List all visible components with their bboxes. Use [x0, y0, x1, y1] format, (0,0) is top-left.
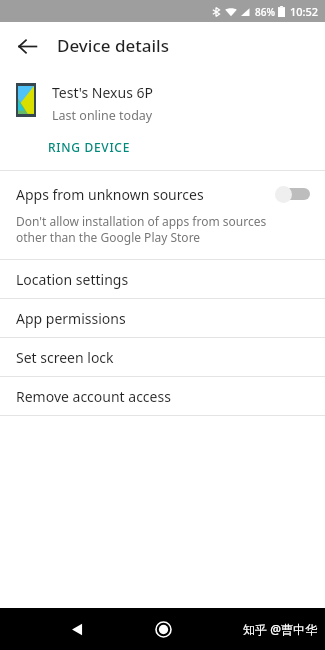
staticText: Test's Nexus 6P	[52, 83, 153, 102]
button[interactable]: Set screen lock	[0, 338, 325, 376]
button[interactable]: Apps from unknown sources	[0, 171, 325, 259]
staticText: 10:52	[290, 4, 319, 19]
button[interactable]: Remove account access	[0, 377, 325, 415]
button[interactable]: Location settings	[0, 260, 325, 298]
button[interactable]: Apps from unknown sources toggle	[275, 184, 311, 204]
staticText: RING DEVICE	[48, 139, 131, 155]
staticText: 86%	[255, 5, 275, 19]
staticText: Location settings	[16, 270, 129, 289]
staticText: Set screen lock	[16, 348, 114, 367]
staticText: Remove account access	[16, 387, 171, 406]
button[interactable]: Home	[146, 612, 180, 646]
staticText: App permissions	[16, 309, 126, 328]
staticText: Last online today	[52, 107, 153, 124]
staticText: Don't allow installation of apps from so…	[16, 213, 275, 245]
button[interactable]: App permissions	[0, 299, 325, 337]
staticText: Apps from unknown sources	[16, 185, 275, 204]
button[interactable]: RING DEVICE	[40, 132, 139, 162]
staticText: Device details	[57, 34, 169, 57]
button[interactable]: Back	[8, 27, 46, 65]
button[interactable]: Back	[60, 612, 94, 646]
staticText: 知乎 @曹中华	[243, 621, 317, 637]
